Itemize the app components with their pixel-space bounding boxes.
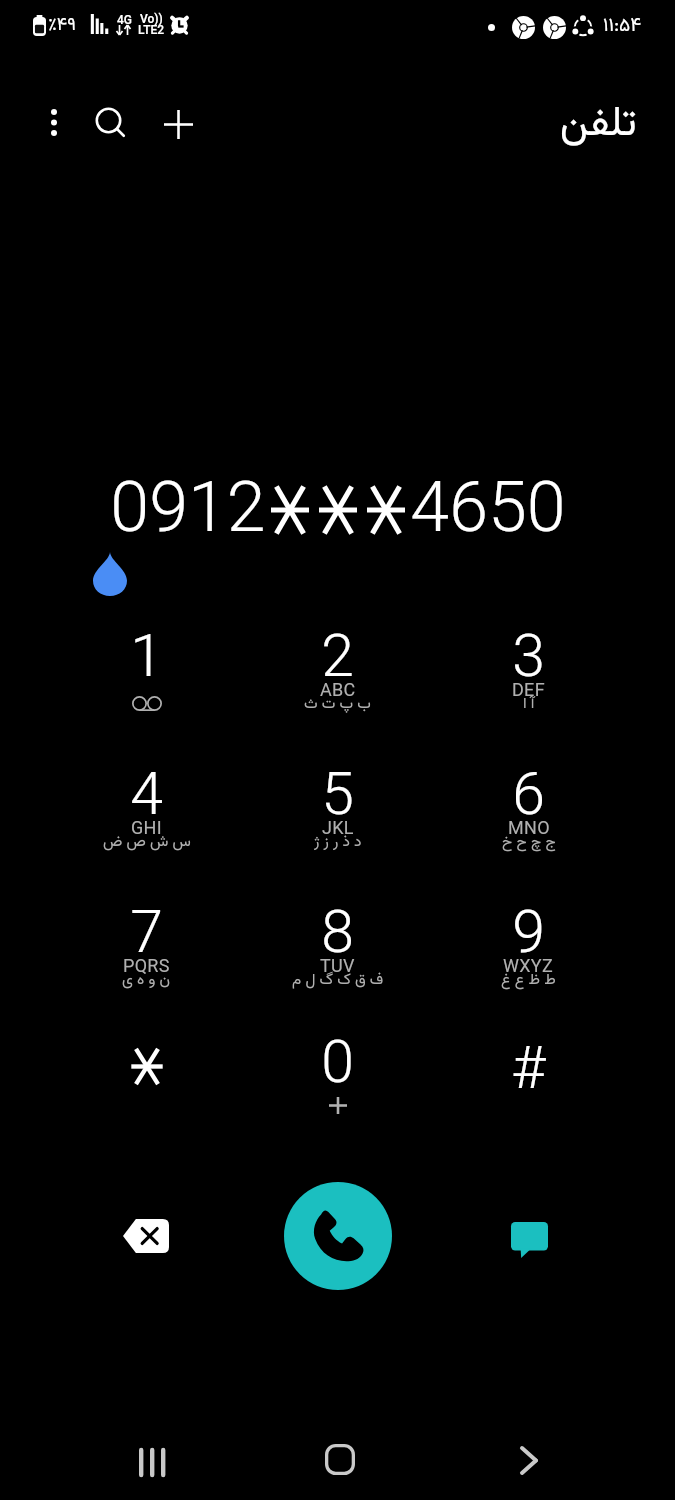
staticText: 2 (321, 621, 354, 690)
staticText: 0912 (110, 466, 266, 548)
staticText: ف ق ک گ ل م (292, 968, 384, 992)
staticText: LTE2 (138, 23, 165, 37)
staticText: آ ا (523, 692, 535, 716)
staticText: ABC (320, 679, 356, 700)
staticText: ب پ ت ث (304, 692, 371, 716)
staticText: ط ظ ع غ (501, 968, 556, 992)
staticText: 5 (321, 759, 354, 828)
button[interactable]: 7 (51, 891, 242, 1021)
staticText: 0 (321, 1027, 354, 1096)
staticText: ۱۱:۵۴ (603, 12, 642, 42)
button[interactable]: Search (78, 90, 142, 154)
button[interactable] (51, 1021, 242, 1151)
staticText: ن و ه ی (122, 968, 171, 992)
button[interactable]: 3 (433, 615, 624, 745)
staticText: 1 (130, 621, 163, 690)
staticText: ج چ ح خ (502, 830, 556, 854)
staticText: ٪۴۹ (48, 12, 76, 40)
staticText: JKL (322, 817, 354, 838)
button[interactable]: 1 (51, 615, 242, 745)
button[interactable]: More options (22, 90, 86, 154)
button[interactable]: Home (305, 1424, 375, 1494)
button[interactable]: 2 (242, 615, 433, 745)
staticText: 6 (512, 759, 545, 828)
staticText: TUV (320, 955, 355, 976)
button[interactable]: 9 (433, 891, 624, 1021)
staticText: DEF (512, 679, 545, 700)
staticText: GHI (131, 817, 162, 838)
staticText: س ش ص ض (103, 830, 191, 854)
staticText: 3 (512, 621, 545, 690)
staticText: MNO (508, 817, 550, 838)
staticText: 8 (321, 897, 354, 966)
button[interactable]: Add contact (146, 92, 210, 156)
staticText: 9 (512, 897, 545, 966)
button[interactable]: Call (284, 1182, 392, 1290)
staticText: تلفن (560, 93, 637, 157)
button[interactable]: 6 (433, 753, 624, 883)
button[interactable]: Backspace (106, 1196, 186, 1276)
button[interactable]: 4 (51, 753, 242, 883)
staticText: د ذ ر ز ژ (314, 830, 362, 854)
staticText: 4 (130, 759, 163, 828)
staticText: # (511, 1033, 546, 1102)
button[interactable]: Back (494, 1425, 564, 1495)
button[interactable]: 8 (242, 891, 433, 1021)
staticText: 4650 (410, 466, 566, 548)
button[interactable]: Recent apps (117, 1427, 187, 1497)
button[interactable]: 5 (242, 753, 433, 883)
staticText: 4G (117, 13, 132, 27)
staticText: 7 (130, 897, 163, 966)
button[interactable]: Message (489, 1200, 569, 1280)
button[interactable]: 0 (242, 1021, 433, 1151)
button[interactable]: # (433, 1021, 624, 1151)
staticText: WXYZ (503, 955, 554, 976)
staticText: Vo)) (140, 12, 163, 26)
staticText: PQRS (123, 955, 170, 976)
